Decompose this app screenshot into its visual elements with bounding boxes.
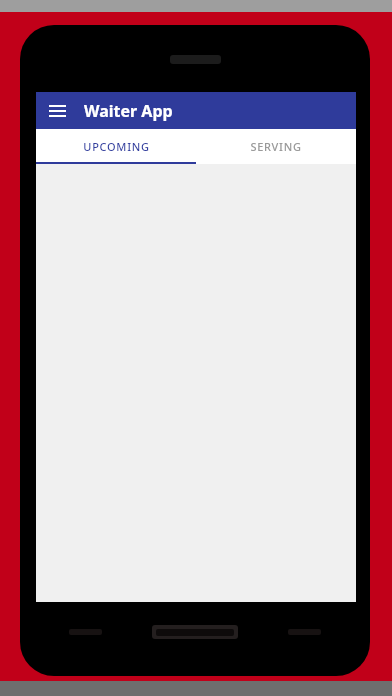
button[interactable]: Home (152, 625, 238, 639)
staticText: Waiter App (84, 100, 173, 122)
button[interactable]: UPCOMING (36, 129, 196, 164)
button[interactable]: Open navigation menu (42, 96, 72, 126)
button[interactable]: SERVING (196, 129, 356, 164)
staticText: UPCOMING (83, 139, 150, 154)
staticText: SERVING (250, 139, 302, 154)
